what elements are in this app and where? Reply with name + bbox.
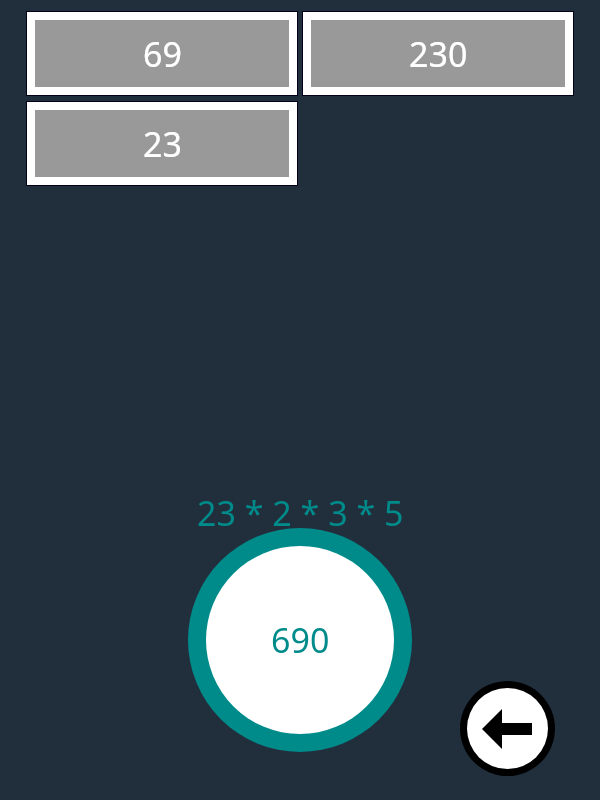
staticText: 23 (143, 121, 182, 167)
button[interactable]: 69 (26, 11, 298, 96)
button[interactable]: 23 (26, 101, 298, 186)
button[interactable]: 230 (302, 11, 574, 96)
staticText: 230 (409, 31, 468, 77)
button[interactable]: Back (460, 681, 555, 776)
staticText: 69 (143, 31, 182, 77)
button[interactable]: 690 (188, 528, 412, 752)
staticText: 690 (271, 617, 330, 663)
staticText: 23 * 2 * 3 * 5 (197, 490, 404, 536)
